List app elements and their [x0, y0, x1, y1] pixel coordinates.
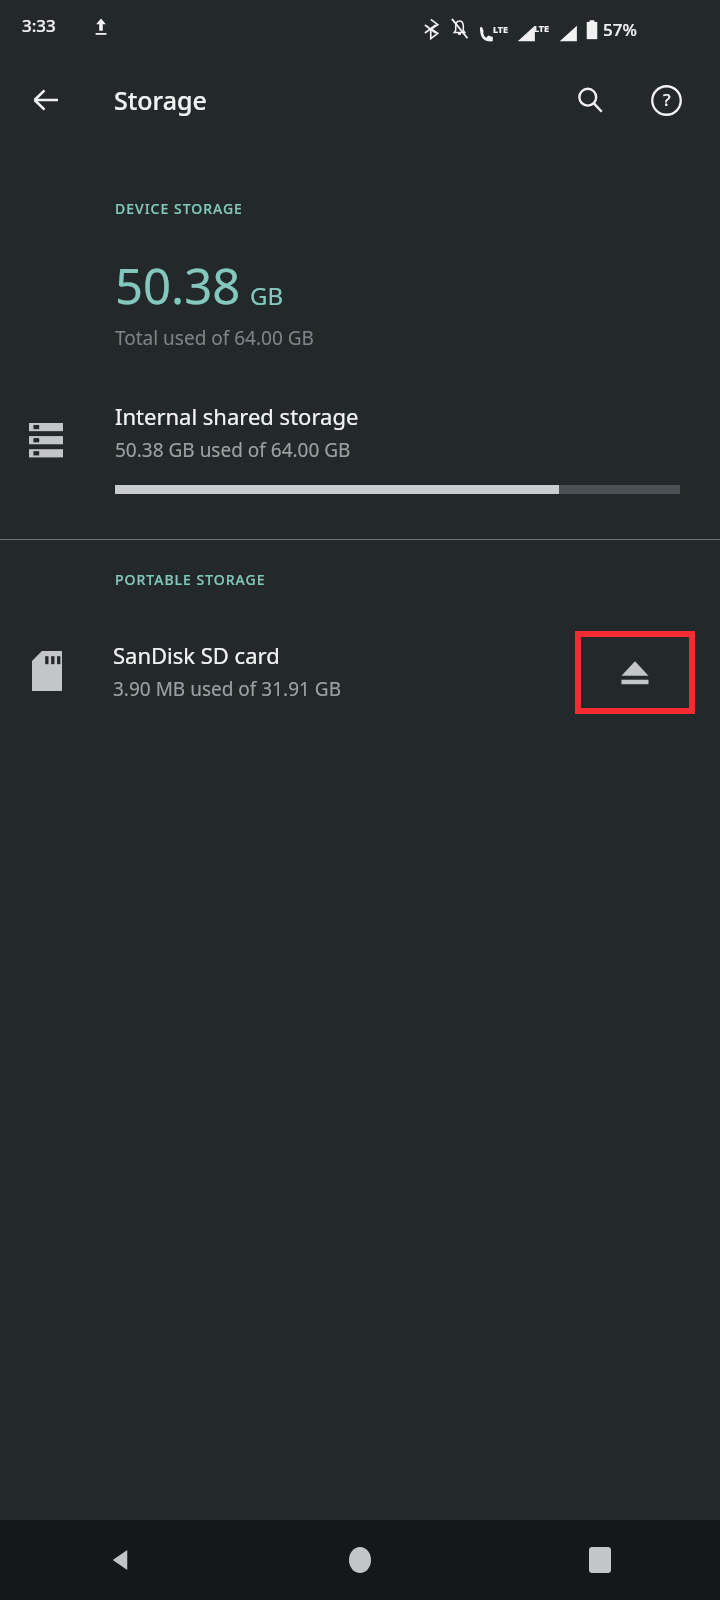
button[interactable]: Eject SD card: [575, 631, 695, 714]
staticText: GB: [250, 279, 284, 312]
staticText: ?: [663, 88, 671, 111]
staticText: Internal shared storage: [115, 401, 359, 431]
button[interactable]: Back: [14, 68, 78, 132]
button[interactable]: SanDisk SD card: [0, 621, 720, 721]
button[interactable]: Back: [0, 1520, 240, 1600]
staticText: 50.38: [115, 252, 241, 319]
button[interactable]: Home: [240, 1520, 480, 1600]
staticText: DEVICE STORAGE: [115, 199, 243, 218]
button[interactable]: Recent apps: [480, 1520, 720, 1600]
button[interactable]: Help: [634, 68, 698, 132]
button[interactable]: Search: [558, 68, 622, 132]
staticText: PORTABLE STORAGE: [115, 570, 266, 589]
staticText: LTE: [534, 22, 550, 34]
staticText: 3:33: [22, 14, 56, 37]
staticText: 3.90 MB used of 31.91 GB: [113, 676, 342, 702]
staticText: 57%: [603, 18, 637, 41]
staticText: 50.38 GB used of 64.00 GB: [115, 437, 351, 463]
staticText: LTE: [493, 23, 509, 35]
button[interactable]: Internal shared storage: [0, 389, 720, 511]
staticText: SanDisk SD card: [113, 640, 280, 670]
staticText: Storage: [114, 83, 207, 117]
staticText: Total used of 64.00 GB: [115, 325, 314, 351]
